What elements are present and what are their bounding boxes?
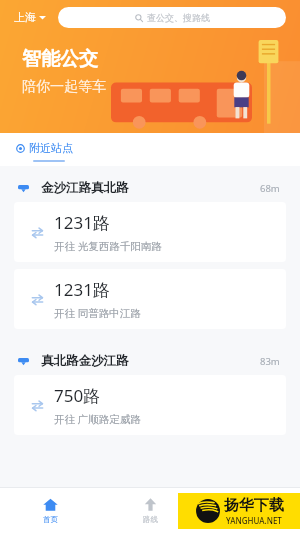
staticText: 首页 — [43, 515, 58, 524]
staticText: 开往 同普路中江路 — [54, 306, 141, 320]
staticText: 智能公交 — [22, 47, 98, 71]
button[interactable]: 1231路 — [14, 202, 286, 262]
staticText: 陪你一起等车 — [22, 78, 106, 96]
staticText: 查公交、搜路线 — [147, 12, 210, 23]
button[interactable]: 首页 — [0, 487, 100, 533]
staticText: 83m — [260, 355, 280, 368]
staticText: 1231路 — [54, 211, 110, 234]
staticText: 真北路金沙江路 — [41, 353, 129, 369]
button[interactable]: 750路 — [14, 375, 286, 435]
staticText: 路线 — [143, 515, 158, 524]
button[interactable]: 上海 — [12, 6, 48, 28]
button[interactable]: 查公交、搜路线 — [58, 7, 286, 28]
button[interactable]: 1231路 — [14, 269, 286, 329]
button[interactable]: 附近站点 — [16, 141, 73, 155]
button[interactable]: 我的 — [200, 487, 300, 533]
staticText: 上海 — [14, 10, 36, 24]
staticText: 1231路 — [54, 278, 110, 301]
staticText: 附近站点 — [29, 141, 73, 155]
staticText: YANGHUA.NET — [226, 515, 282, 526]
staticText: 开往 广顺路定威路 — [54, 412, 141, 426]
button[interactable]: 金沙江路真北路 — [0, 172, 300, 202]
staticText: 开往 光复西路千阳南路 — [54, 239, 162, 253]
button[interactable]: 路线 — [100, 487, 200, 533]
staticText: 我的 — [243, 515, 258, 524]
staticText: 金沙江路真北路 — [41, 180, 129, 196]
staticText: 68m — [260, 182, 280, 195]
staticText: 扬华下载 — [224, 496, 284, 515]
button[interactable]: 真北路金沙江路 — [0, 345, 300, 375]
staticText: 750路 — [54, 384, 101, 407]
